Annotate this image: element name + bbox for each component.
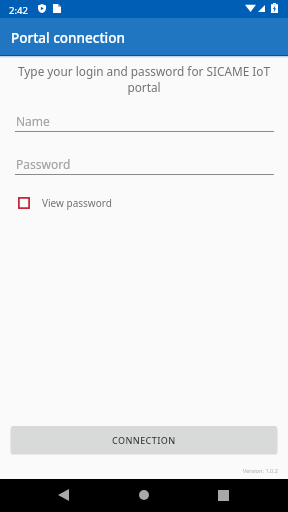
staticText: Password (16, 156, 71, 172)
staticText: Portal connection (11, 29, 125, 47)
button[interactable]: View password (0, 192, 288, 214)
button[interactable]: Recent apps (207, 484, 239, 506)
staticText: Type your login and password for SICAME … (13, 63, 275, 95)
button[interactable]: CONNECTION (11, 426, 277, 454)
staticText: CONNECTION (112, 434, 176, 446)
button[interactable]: Home (128, 484, 160, 506)
staticText: View password (42, 196, 112, 210)
staticText: Name (16, 113, 50, 129)
staticText: 2:42 (9, 4, 28, 17)
staticText: Version: 1.0.2 (0, 467, 278, 475)
button[interactable]: Back (47, 484, 79, 506)
